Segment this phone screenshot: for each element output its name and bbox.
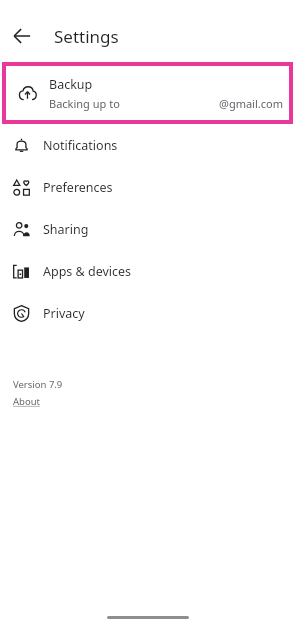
staticText: About	[13, 395, 40, 408]
button[interactable]: Back	[0, 14, 44, 58]
button[interactable]: Privacy	[0, 292, 295, 334]
button[interactable]: Apps & devices	[0, 250, 295, 292]
staticText: @gmail.com	[219, 96, 283, 111]
staticText: Apps & devices	[43, 263, 132, 280]
staticText: Version 7.9	[13, 378, 63, 391]
button[interactable]: Sharing	[0, 208, 295, 250]
staticText: Notifications	[43, 137, 118, 154]
staticText: Sharing	[43, 221, 89, 238]
button[interactable]: Preferences	[0, 166, 295, 208]
staticText: Backup	[49, 76, 93, 93]
staticText: Settings	[54, 25, 119, 48]
staticText: Privacy	[43, 305, 85, 322]
button[interactable]: About	[13, 395, 40, 408]
button[interactable]: Backup	[6, 66, 289, 120]
button[interactable]: Notifications	[0, 124, 295, 166]
staticText: Preferences	[43, 179, 113, 196]
staticText: Backing up to	[49, 96, 120, 111]
